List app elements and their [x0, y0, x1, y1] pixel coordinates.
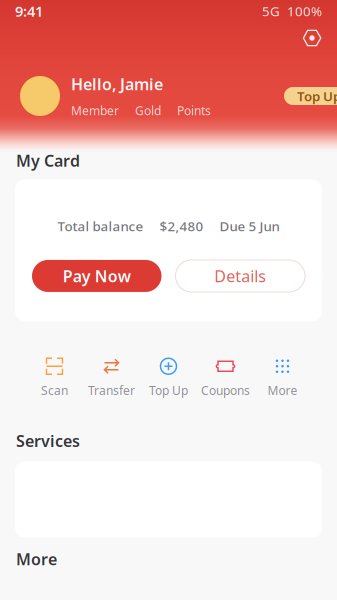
- staticText: Gold: [135, 103, 161, 119]
- button[interactable]: Top Up: [140, 356, 197, 398]
- staticText: Transfer: [88, 382, 135, 398]
- button[interactable]: Top Up: [284, 87, 337, 105]
- staticText: Top Up: [297, 87, 337, 105]
- staticText: Hello, Jamie: [71, 73, 163, 95]
- staticText: Services: [16, 430, 80, 451]
- staticText: Due 5 Jun: [219, 217, 279, 235]
- staticText: Coupons: [201, 382, 250, 398]
- staticText: Pay Now: [63, 265, 131, 286]
- button[interactable]: Coupons: [197, 356, 254, 398]
- staticText: 9:41: [15, 1, 43, 21]
- staticText: My Card: [16, 150, 80, 171]
- button[interactable]: Pay Now: [32, 260, 161, 292]
- button[interactable]: Details: [175, 260, 305, 292]
- staticText: Member: [71, 103, 119, 119]
- staticText: Details: [214, 265, 266, 286]
- staticText: More: [267, 382, 297, 398]
- staticText: Scan: [41, 382, 68, 398]
- staticText: Top Up: [149, 382, 188, 398]
- staticText: 100%: [287, 2, 322, 20]
- staticText: $2,480: [159, 217, 203, 235]
- staticText: 5G: [262, 2, 280, 20]
- staticText: Total balance: [57, 217, 143, 235]
- button[interactable]: Settings: [295, 21, 329, 55]
- staticText: Points: [177, 103, 211, 119]
- button[interactable]: Transfer: [83, 356, 140, 398]
- button[interactable]: Scan: [26, 356, 83, 398]
- button[interactable]: More: [254, 356, 311, 398]
- staticText: More: [16, 548, 57, 570]
